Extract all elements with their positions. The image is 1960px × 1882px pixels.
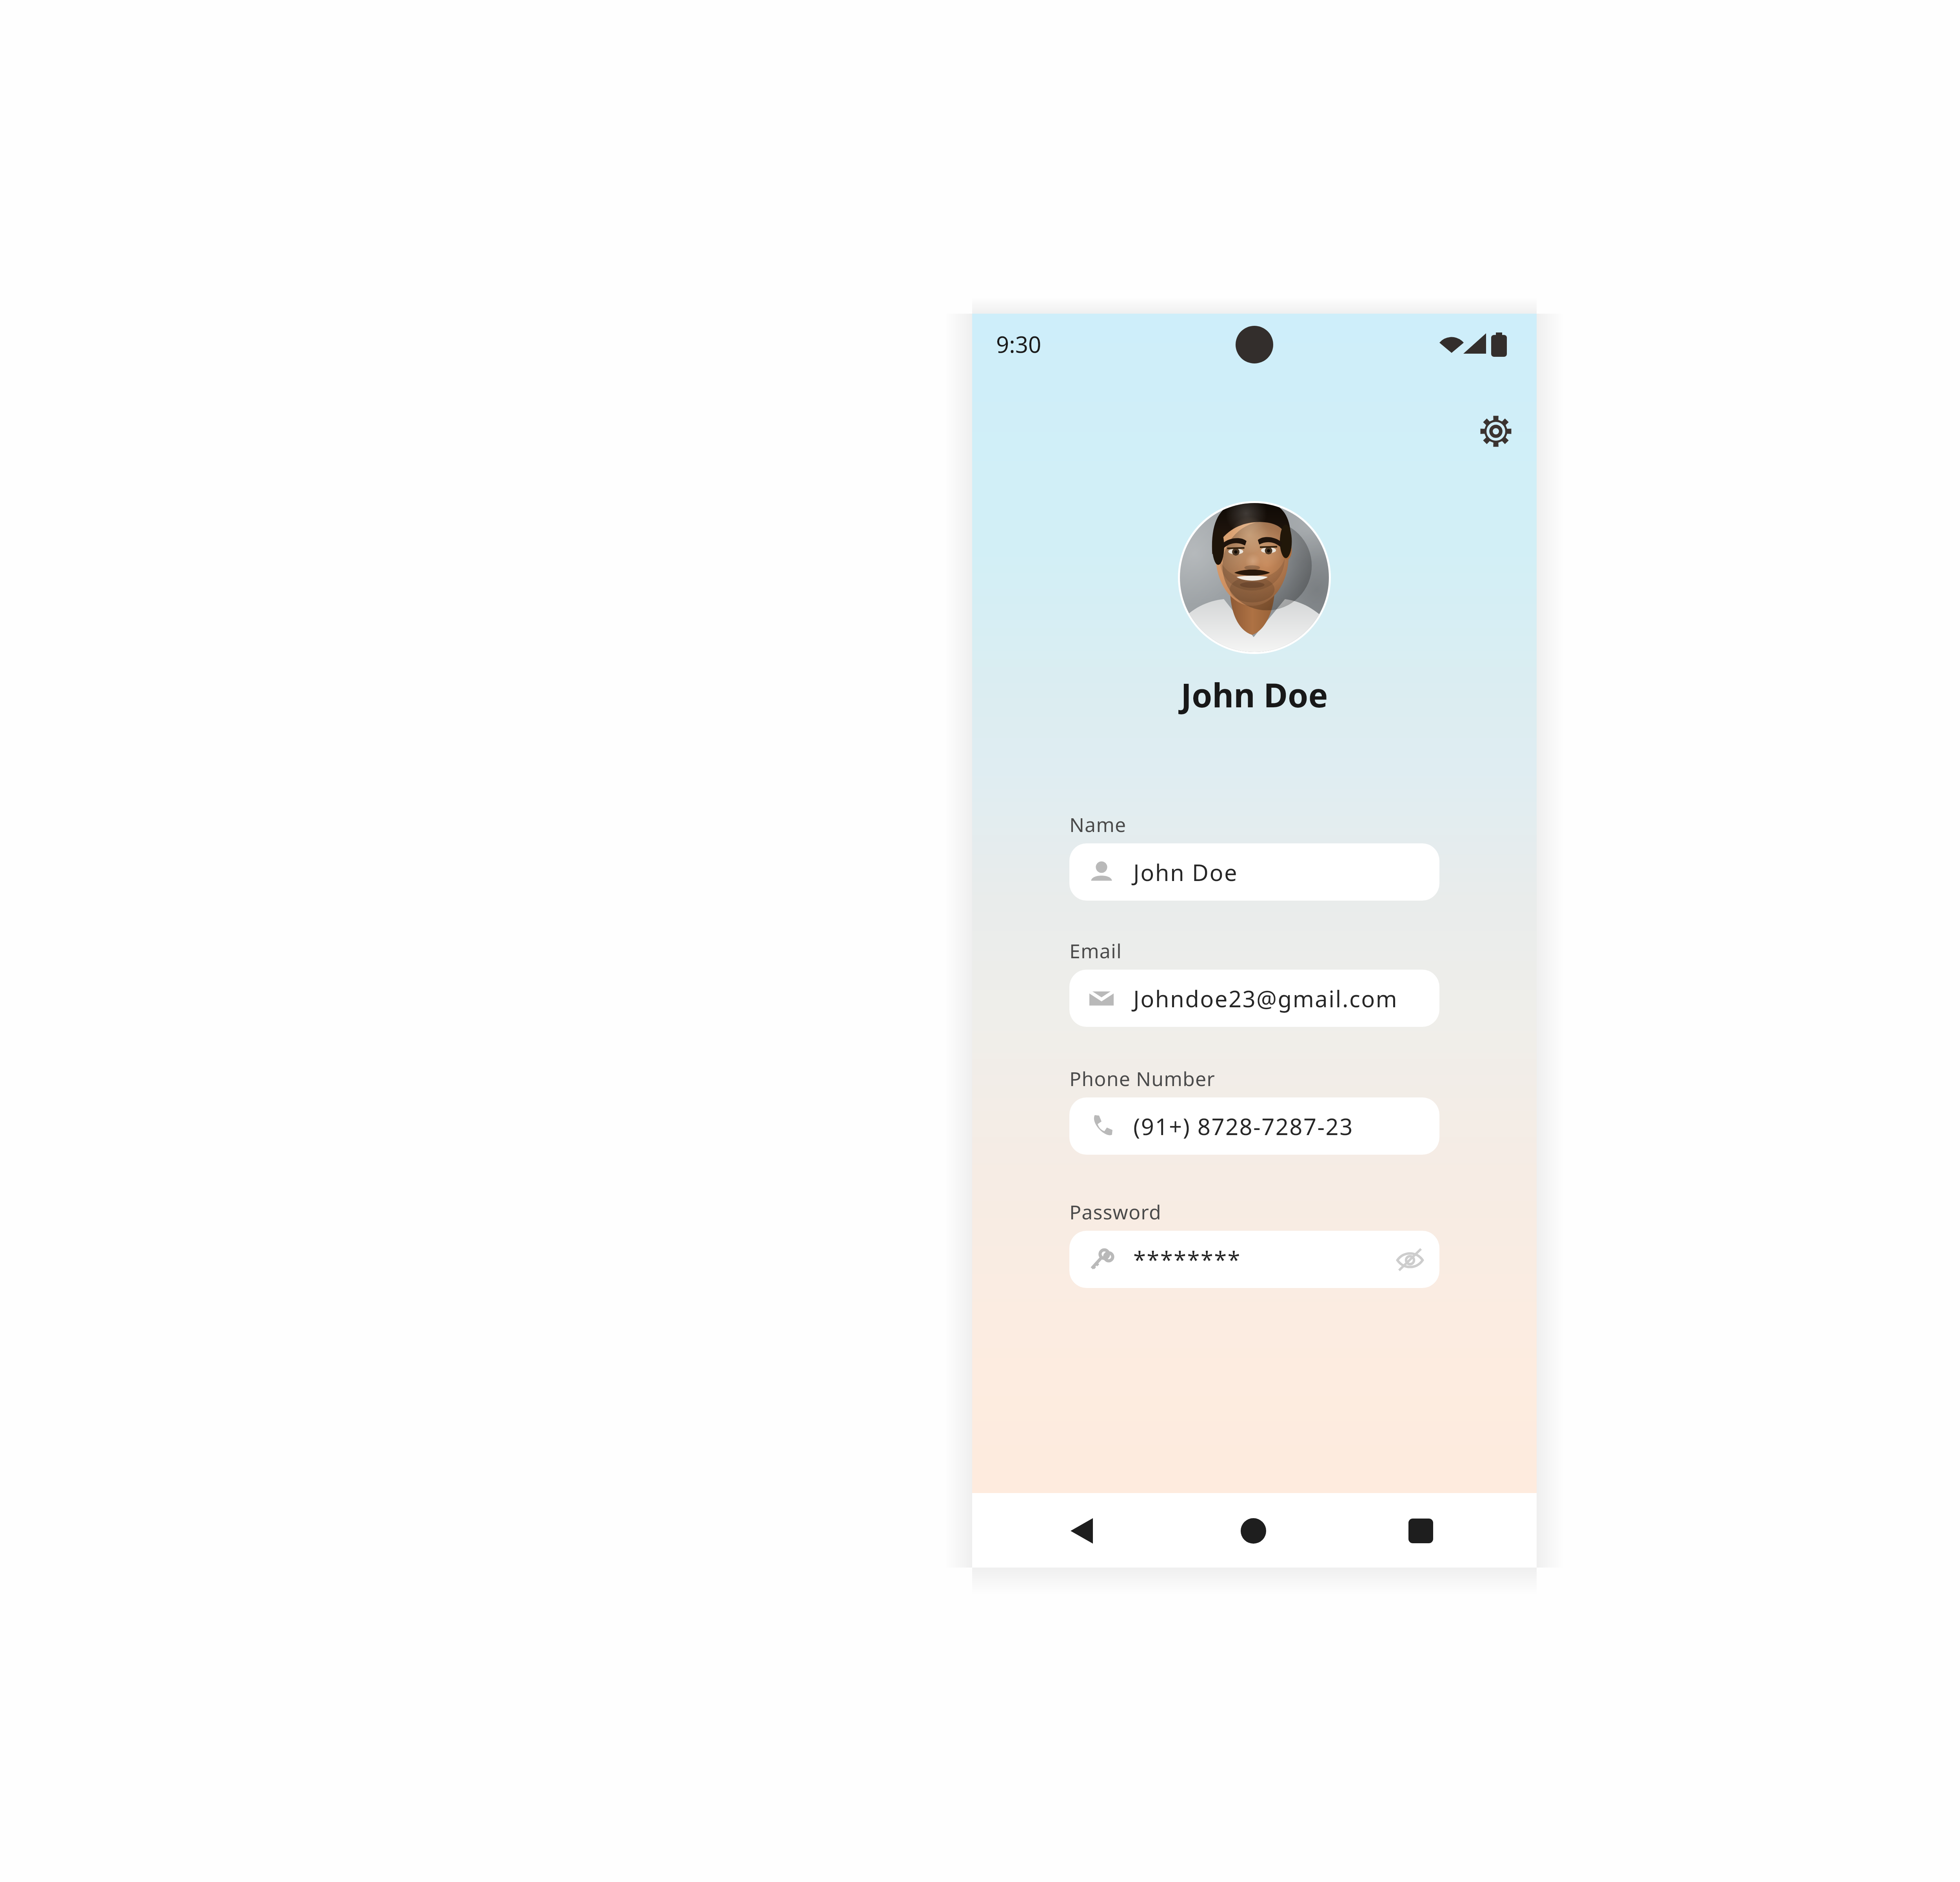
button[interactable]: Recents	[1391, 1501, 1450, 1560]
staticText: 9:30	[996, 329, 1042, 360]
button[interactable]: John Doe	[1069, 843, 1439, 901]
staticText: Password	[1069, 1199, 1161, 1225]
button[interactable]: Home	[1224, 1501, 1283, 1560]
button[interactable]: Johndoe23@gmail.com	[1069, 970, 1439, 1027]
button[interactable]: (91+) 8728-7287-23	[1069, 1097, 1439, 1155]
staticText: Phone Number	[1069, 1065, 1215, 1092]
staticText: (91+) 8728-7287-23	[1133, 1111, 1354, 1142]
button[interactable]: Settings	[1474, 409, 1518, 453]
staticText: Email	[1069, 937, 1122, 964]
staticText: John Doe	[1133, 857, 1238, 888]
staticText: Name	[1069, 811, 1127, 838]
button[interactable]: Show password	[1395, 1244, 1425, 1274]
staticText: ********	[1133, 1244, 1241, 1275]
button[interactable]: Back	[1052, 1501, 1111, 1560]
staticText: John Doe	[972, 672, 1537, 717]
staticText: Johndoe23@gmail.com	[1133, 983, 1398, 1014]
button[interactable]: ********	[1069, 1231, 1439, 1288]
button[interactable]: Profile photo	[1180, 503, 1329, 652]
